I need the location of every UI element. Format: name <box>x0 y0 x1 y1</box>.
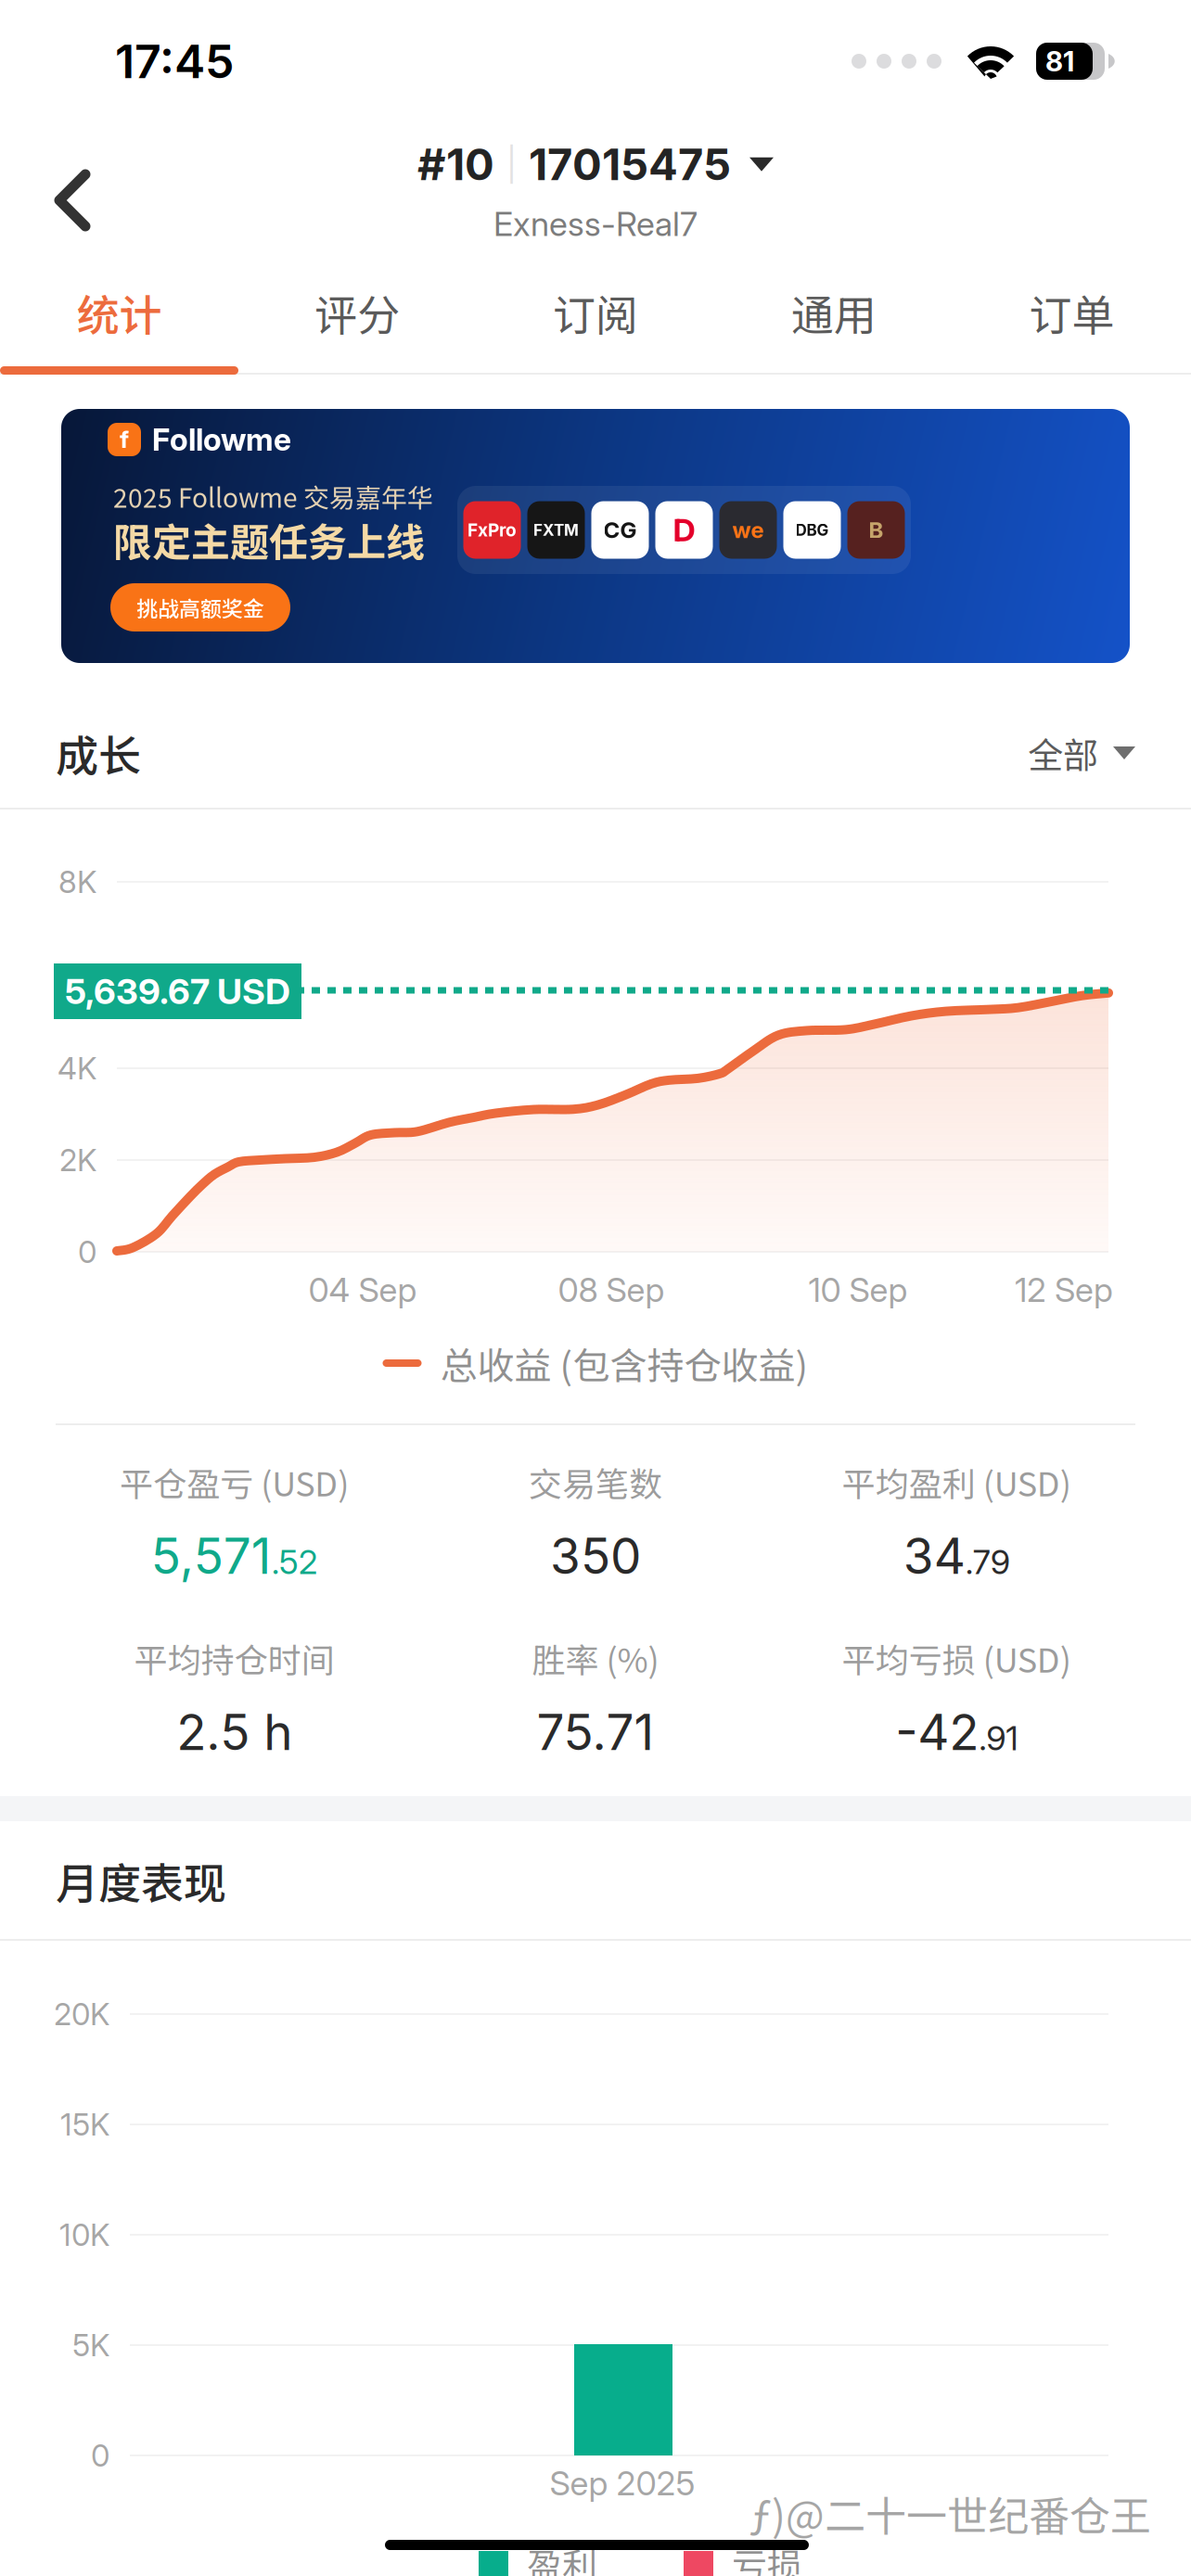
staticText: 20K <box>54 1996 109 2033</box>
staticText: 平均亏损 (USD) <box>842 1635 1071 1681</box>
staticText: 4K <box>58 1050 96 1087</box>
button[interactable]: 订阅 <box>476 260 715 365</box>
staticText: .52 <box>271 1542 318 1582</box>
staticText: .79 <box>965 1542 1010 1582</box>
staticText: 17015475 <box>529 138 731 191</box>
staticText: 评分 <box>315 283 400 342</box>
staticText: 胜率 (%) <box>532 1635 659 1681</box>
staticText: 5,639.67 USD <box>65 970 290 1013</box>
staticText: DBG <box>795 520 829 539</box>
staticText: 75.71 <box>537 1702 654 1762</box>
staticText: ƒ)@二十一世纪番仓王 <box>749 2485 1151 2541</box>
staticText: .91 <box>979 1718 1018 1758</box>
staticText: 2K <box>59 1141 96 1178</box>
staticText: 全部 <box>1028 729 1098 777</box>
staticText: -42 <box>895 1702 979 1762</box>
staticText: Sep 2025 <box>550 2463 695 2503</box>
staticText: 订单 <box>1029 283 1115 342</box>
staticText: 08 Sep <box>558 1270 665 1310</box>
staticText: 12 Sep <box>1015 1270 1113 1310</box>
staticText: 8K <box>58 863 96 900</box>
button[interactable]: 通用 <box>715 260 953 365</box>
staticText: 10 Sep <box>808 1270 908 1310</box>
staticText: 亏损 <box>732 2539 802 2576</box>
staticText: 10K <box>59 2216 109 2253</box>
staticText: f <box>120 425 129 454</box>
staticText: we <box>732 516 764 543</box>
button[interactable]: 全部 <box>1028 729 1135 777</box>
staticText: | <box>506 144 517 185</box>
staticText: 总收益 (包含持仓收益) <box>440 1338 808 1389</box>
staticText: 5,571 <box>151 1526 271 1586</box>
button[interactable]: Back <box>0 122 128 260</box>
staticText: 0 <box>78 1233 96 1270</box>
staticText: 04 Sep <box>308 1270 417 1310</box>
staticText: Followme <box>152 421 291 458</box>
staticText: D <box>673 511 695 549</box>
staticText: 成长 <box>56 724 141 782</box>
staticText: 统计 <box>76 283 162 342</box>
staticText: FxPro <box>467 519 517 541</box>
staticText: CG <box>603 516 637 543</box>
staticText: 15K <box>60 2106 109 2143</box>
staticText: FXTM <box>533 520 579 539</box>
staticText: B <box>869 516 884 543</box>
button[interactable]: FxPro <box>61 409 1130 663</box>
button[interactable]: 评分 <box>238 260 476 365</box>
staticText: 月度表现 <box>56 1851 226 1910</box>
staticText: Exness-Real7 <box>493 204 698 244</box>
staticText: 0 <box>91 2437 109 2474</box>
staticText: 盈利 <box>527 2539 597 2576</box>
staticText: 34 <box>903 1526 965 1586</box>
staticText: 2.5 h <box>176 1702 292 1762</box>
staticText: 2025 Followme 交易嘉年华 <box>113 478 433 514</box>
staticText: 通用 <box>791 283 876 342</box>
staticText: 交易笔数 <box>529 1459 662 1505</box>
staticText: 平仓盈亏 (USD) <box>120 1459 349 1505</box>
staticText: 5K <box>72 2327 109 2364</box>
staticText: 17:45 <box>115 33 234 89</box>
staticText: 平均盈利 (USD) <box>842 1459 1071 1505</box>
button[interactable]: 统计 <box>0 260 238 365</box>
staticText: 限定主题任务上线 <box>113 513 425 566</box>
staticText: 81 <box>1045 44 1074 78</box>
staticText: 平均持仓时间 <box>134 1635 335 1681</box>
staticText: 挑战高额奖金 <box>136 593 264 622</box>
staticText: 350 <box>550 1526 641 1586</box>
staticText: #10 <box>417 138 494 191</box>
button[interactable]: 订单 <box>953 260 1191 365</box>
staticText: 订阅 <box>553 283 638 342</box>
